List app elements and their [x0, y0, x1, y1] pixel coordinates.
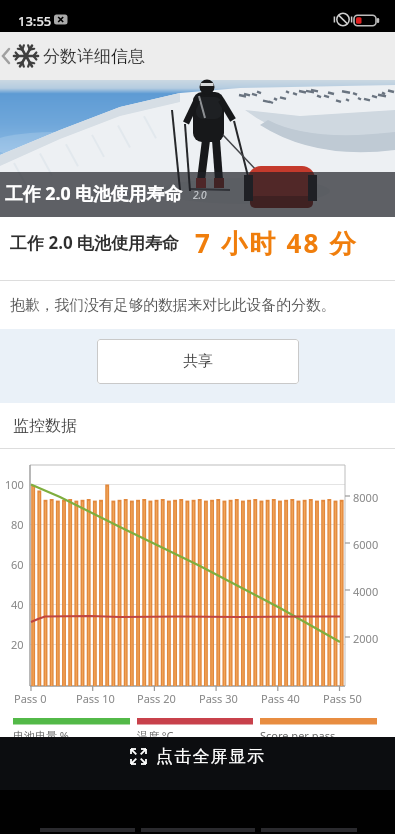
staticText: 2000 [353, 631, 379, 646]
staticText: Pass 40 [261, 691, 300, 706]
button[interactable]: 点击全屏显示 [129, 746, 266, 767]
staticText: Pass 10 [76, 691, 115, 706]
staticText: 抱歉，我们没有足够的数据来对比此设备的分数。 [10, 296, 336, 315]
button[interactable]: 共享 [97, 339, 299, 384]
button[interactable] [131, 790, 263, 834]
button[interactable] [0, 790, 131, 834]
button[interactable] [0, 32, 42, 80]
button[interactable] [263, 790, 395, 834]
staticText: Pass 0 [14, 691, 47, 706]
staticText: 6000 [353, 537, 379, 552]
staticText: 8000 [353, 490, 379, 505]
staticText: Pass 50 [323, 691, 362, 706]
staticText: Score per pass [260, 728, 336, 743]
staticText: 2.0 [193, 188, 207, 202]
staticText: 共享 [183, 352, 213, 371]
staticText: 电池电量 % [13, 728, 70, 743]
staticText: 温度 °C [137, 728, 174, 743]
staticText: Pass 30 [199, 691, 238, 706]
staticText: 监控数据 [13, 416, 77, 436]
staticText: 20 [11, 637, 24, 652]
staticText: 7 小时 48 分 [195, 225, 358, 261]
staticText: 工作 2.0 电池使用寿命 [10, 231, 180, 254]
staticText: 40 [11, 597, 24, 612]
staticText: 80 [11, 517, 24, 532]
staticText: 4000 [353, 584, 379, 599]
staticText: 分数详细信息 [43, 46, 145, 67]
staticText: 点击全屏显示 [156, 746, 266, 767]
staticText: 工作 2.0 电池使用寿命 [5, 181, 182, 205]
staticText: 100 [5, 477, 24, 492]
staticText: Pass 20 [137, 691, 176, 706]
staticText: 60 [11, 557, 24, 572]
staticText: 13:55 [18, 12, 52, 30]
